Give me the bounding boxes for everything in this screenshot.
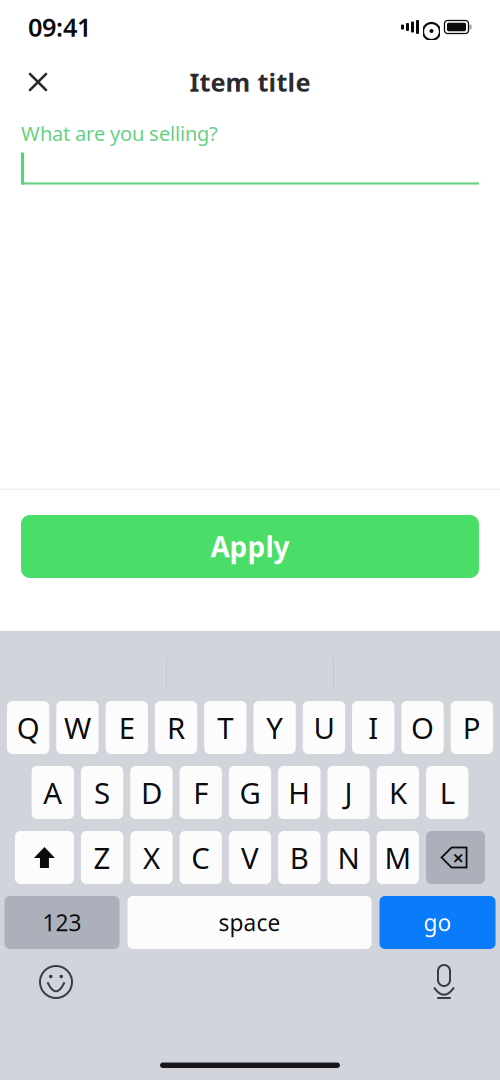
button[interactable]: Y bbox=[253, 701, 296, 754]
staticText: Item title bbox=[189, 65, 310, 99]
button[interactable]: M bbox=[377, 831, 419, 884]
button[interactable]: Z bbox=[81, 831, 123, 884]
button[interactable]: H bbox=[278, 766, 320, 819]
button[interactable]: L bbox=[426, 766, 468, 819]
button[interactable]: R bbox=[155, 701, 197, 754]
staticText: 09:41 bbox=[28, 10, 91, 44]
staticText: A bbox=[43, 773, 62, 812]
button[interactable]: I bbox=[352, 701, 394, 754]
staticText: D bbox=[141, 773, 162, 812]
button[interactable]: G bbox=[229, 766, 271, 819]
button[interactable]: P bbox=[451, 701, 493, 754]
staticText: X bbox=[143, 838, 160, 877]
staticText: V bbox=[241, 838, 259, 877]
staticText: L bbox=[440, 773, 455, 812]
staticText: 123 bbox=[42, 907, 81, 937]
button[interactable]: D bbox=[130, 766, 172, 819]
button[interactable]: X bbox=[130, 831, 172, 884]
staticText: F bbox=[193, 773, 208, 812]
button[interactable]: N bbox=[327, 831, 370, 884]
staticText: × bbox=[453, 844, 464, 871]
button[interactable]: E bbox=[106, 701, 148, 754]
button[interactable]: O bbox=[401, 701, 444, 754]
staticText: I bbox=[368, 708, 378, 747]
staticText: E bbox=[119, 708, 135, 747]
staticText: T bbox=[217, 708, 233, 747]
button[interactable]: F bbox=[179, 766, 222, 819]
button[interactable]: Shift bbox=[15, 831, 74, 884]
staticText: go bbox=[423, 907, 451, 937]
staticText: What are you selling? bbox=[21, 120, 218, 147]
button[interactable]: K bbox=[377, 766, 419, 819]
button[interactable]: T bbox=[204, 701, 246, 754]
staticText: M bbox=[384, 838, 411, 877]
button[interactable]: Delete bbox=[426, 831, 485, 884]
button[interactable]: J bbox=[327, 766, 370, 819]
staticText: S bbox=[94, 773, 110, 812]
staticText: C bbox=[191, 838, 210, 877]
staticText: H bbox=[288, 773, 310, 812]
button[interactable]: U bbox=[303, 701, 345, 754]
button[interactable]: go bbox=[379, 896, 495, 949]
button[interactable]: Emoji bbox=[38, 964, 74, 1000]
button[interactable]: A bbox=[32, 766, 74, 819]
button[interactable]: Close bbox=[16, 60, 60, 104]
button[interactable]: Q bbox=[7, 701, 49, 754]
staticText: G bbox=[239, 773, 260, 812]
button[interactable]: 123 bbox=[4, 896, 119, 949]
staticText: Q bbox=[17, 708, 40, 747]
staticText: B bbox=[290, 838, 309, 877]
staticText: P bbox=[463, 708, 481, 747]
button[interactable]: space bbox=[127, 896, 371, 949]
staticText: U bbox=[313, 708, 334, 747]
button[interactable]: C bbox=[179, 831, 222, 884]
staticText: K bbox=[389, 773, 407, 812]
staticText: N bbox=[338, 838, 360, 877]
staticText: space bbox=[218, 907, 280, 937]
staticText: Z bbox=[94, 838, 111, 877]
staticText: W bbox=[64, 708, 91, 747]
button[interactable]: Apply bbox=[21, 515, 479, 578]
staticText: J bbox=[345, 773, 353, 812]
button[interactable]: Dictate bbox=[426, 963, 462, 1001]
staticText: Apply bbox=[210, 528, 289, 565]
button[interactable]: W bbox=[56, 701, 99, 754]
staticText: Y bbox=[266, 708, 283, 747]
staticText: R bbox=[167, 708, 185, 747]
button[interactable]: S bbox=[81, 766, 123, 819]
button[interactable]: V bbox=[229, 831, 271, 884]
staticText: O bbox=[411, 708, 434, 747]
button[interactable]: B bbox=[278, 831, 320, 884]
